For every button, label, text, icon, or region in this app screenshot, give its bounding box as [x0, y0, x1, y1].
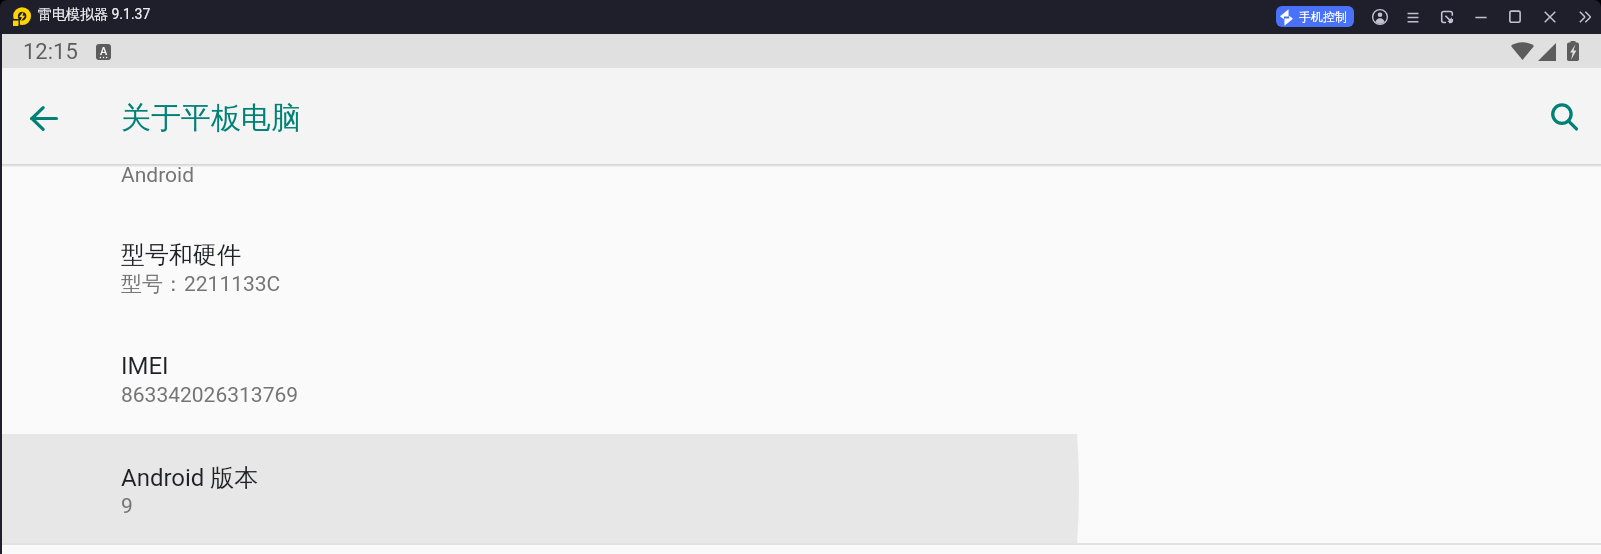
button[interactable]: Search [1542, 95, 1587, 140]
staticText: 863342026313769 [121, 383, 299, 408]
button[interactable]: Android [0, 167, 1601, 212]
button[interactable]: 手机控制 [1276, 6, 1354, 27]
button[interactable]: Minimize [1468, 4, 1494, 30]
button[interactable]: Maximize [1502, 4, 1528, 30]
button[interactable]: Account [1367, 4, 1393, 30]
button[interactable]: Expand [1572, 4, 1598, 30]
staticText: 型号：2211133C [121, 271, 281, 297]
staticText: 型号和硬件 [121, 240, 241, 270]
staticText: 关于平板电脑 [121, 99, 301, 137]
staticText: Android 版本 [121, 463, 259, 493]
button[interactable]: Menu [1400, 4, 1426, 30]
staticText: Android [121, 163, 194, 188]
staticText: 雷电模拟器 9.1.37 [38, 6, 151, 24]
button[interactable]: Back [21, 96, 66, 141]
button[interactable]: Restore window [1434, 4, 1460, 30]
button[interactable]: Close [1537, 4, 1563, 30]
staticText: 9 [121, 494, 133, 519]
staticText: IMEI [121, 352, 169, 380]
button[interactable]: IMEI [0, 323, 1601, 434]
staticText: 手机控制 [1299, 9, 1347, 24]
button[interactable]: 型号和硬件 [0, 212, 1601, 323]
staticText: 12:15 [23, 39, 78, 65]
button[interactable]: Android 版本 [0, 434, 1601, 543]
staticText: A [100, 45, 108, 58]
